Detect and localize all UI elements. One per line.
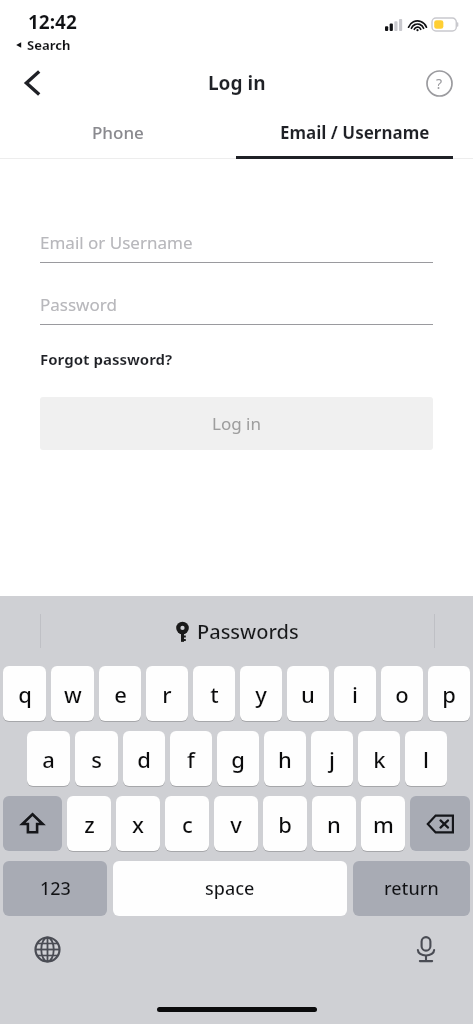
staticText: ? (436, 74, 443, 93)
staticText: Password (40, 293, 117, 316)
staticText: Search (27, 36, 71, 54)
button[interactable]: p (428, 666, 470, 721)
staticText: x (132, 809, 144, 839)
button[interactable]: r (146, 666, 188, 721)
staticText: t (210, 679, 219, 709)
button[interactable]: s (75, 731, 118, 786)
staticText: return (384, 876, 439, 901)
button[interactable]: Email / Username (236, 108, 473, 156)
button[interactable]: a (27, 731, 70, 786)
button[interactable]: g (217, 731, 259, 786)
staticText: f (187, 744, 195, 774)
button[interactable]: Change keyboard (30, 932, 64, 966)
staticText: e (114, 679, 127, 709)
staticText: Passwords (197, 618, 299, 645)
button[interactable]: Log in (40, 397, 433, 450)
staticText: l (423, 744, 429, 774)
staticText: v (230, 809, 242, 839)
button[interactable]: j (311, 731, 353, 786)
button[interactable]: h (264, 731, 306, 786)
staticText: m (373, 809, 394, 839)
staticText: 12:42 (28, 9, 77, 35)
button[interactable]: return (353, 861, 470, 916)
button[interactable]: i (334, 666, 376, 721)
button[interactable]: w (51, 666, 94, 721)
button[interactable]: x (116, 796, 160, 851)
staticText: Email / Username (280, 121, 430, 144)
staticText: y (255, 679, 267, 709)
staticText: u (301, 679, 315, 709)
button[interactable]: f (170, 731, 212, 786)
button[interactable]: Password (40, 285, 433, 325)
button[interactable]: Dictate (409, 932, 443, 966)
button[interactable]: n (312, 796, 356, 851)
staticText: c (182, 809, 193, 839)
button[interactable]: k (358, 731, 400, 786)
staticText: z (84, 809, 95, 839)
button[interactable]: o (381, 666, 423, 721)
button[interactable]: Backspace (410, 796, 470, 851)
button[interactable]: m (361, 796, 405, 851)
staticText: n (327, 809, 341, 839)
button[interactable]: l (405, 731, 447, 786)
staticText: d (137, 744, 151, 774)
button[interactable]: b (263, 796, 307, 851)
button[interactable]: t (193, 666, 235, 721)
staticText: Log in (212, 412, 261, 435)
button[interactable]: Passwords (175, 618, 299, 645)
button[interactable]: Back (12, 63, 52, 103)
button[interactable]: u (287, 666, 329, 721)
button[interactable]: v (214, 796, 258, 851)
button[interactable]: Shift (3, 796, 62, 851)
button[interactable]: y (240, 666, 282, 721)
staticText: s (91, 744, 102, 774)
staticText: b (278, 809, 292, 839)
button[interactable]: Phone (0, 108, 236, 156)
button[interactable]: 123 (3, 861, 107, 916)
staticText: g (231, 744, 245, 774)
staticText: p (442, 679, 456, 709)
staticText: k (373, 744, 386, 774)
staticText: space (205, 876, 255, 901)
staticText: q (18, 679, 32, 709)
staticText: j (329, 744, 335, 774)
button[interactable]: Forgot password? (40, 349, 173, 369)
button[interactable]: z (67, 796, 111, 851)
button[interactable]: Help (423, 67, 455, 99)
button[interactable]: c (165, 796, 209, 851)
staticText: i (352, 679, 358, 709)
button[interactable]: Email or Username (40, 223, 433, 263)
staticText: Phone (92, 121, 144, 144)
staticText: h (278, 744, 292, 774)
button[interactable]: q (3, 666, 46, 721)
staticText: Forgot password? (40, 349, 173, 369)
staticText: 123 (40, 876, 71, 901)
staticText: Log in (208, 70, 266, 96)
button[interactable]: d (123, 731, 165, 786)
button[interactable]: e (99, 666, 141, 721)
staticText: a (42, 744, 55, 774)
staticText: r (162, 679, 172, 709)
staticText: w (64, 679, 82, 709)
button[interactable]: space (113, 861, 347, 916)
staticText: o (395, 679, 409, 709)
staticText: Email or Username (40, 231, 193, 254)
